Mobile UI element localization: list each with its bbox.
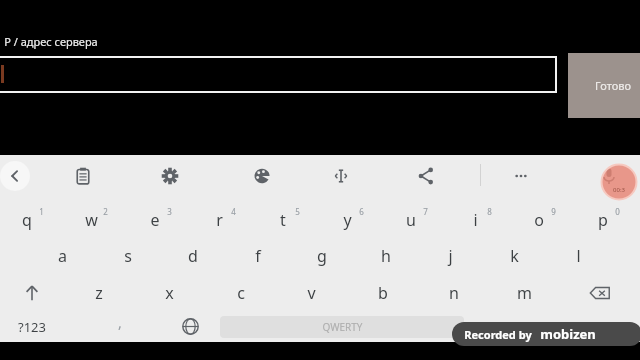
staticText: r [216, 209, 223, 231]
staticText: QWERTY [322, 320, 363, 334]
button[interactable]: w [64, 197, 128, 237]
button[interactable]: c [205, 274, 276, 311]
button[interactable]: r [192, 197, 256, 237]
button[interactable] [0, 56, 557, 93]
button[interactable]: o [512, 197, 576, 237]
staticText: m [517, 282, 532, 304]
staticText: h [381, 245, 391, 267]
button[interactable]: Back [0, 161, 30, 191]
staticText: n [449, 282, 459, 304]
button[interactable]: g [290, 237, 354, 274]
button[interactable]: x [134, 274, 205, 311]
button[interactable]: Backspace [560, 274, 640, 311]
staticText: Готово [595, 78, 631, 93]
staticText: , [118, 313, 122, 332]
button[interactable]: l [546, 237, 610, 274]
button[interactable]: h [354, 237, 418, 274]
button[interactable]: Готово [568, 53, 640, 118]
staticText: 6 [359, 206, 364, 217]
staticText: y [343, 209, 352, 231]
staticText: ?123 [18, 318, 46, 336]
button[interactable]: More options [506, 161, 536, 191]
staticText: i [473, 209, 478, 231]
button[interactable]: Themes [247, 161, 277, 191]
staticText: c [237, 282, 245, 304]
button[interactable]: d [160, 237, 225, 274]
staticText: b [378, 282, 388, 304]
button[interactable]: q [0, 197, 64, 237]
staticText: 4 [231, 206, 236, 217]
staticText: u [406, 209, 416, 231]
staticText: 0 [615, 206, 620, 217]
button[interactable]: a [30, 237, 95, 274]
staticText: x [165, 282, 174, 304]
button[interactable]: i [448, 197, 512, 237]
button[interactable]: n [418, 274, 489, 311]
button[interactable]: z [64, 274, 134, 311]
button[interactable]: Share [411, 161, 441, 191]
staticText: 9 [551, 206, 556, 217]
staticText: w [85, 209, 98, 231]
staticText: 8 [487, 206, 492, 217]
staticText: l [576, 245, 581, 267]
button[interactable]: Change language [160, 311, 220, 342]
button[interactable]: Text editing [326, 161, 356, 191]
staticText: 2 [103, 206, 108, 217]
staticText: mobizen [540, 325, 596, 343]
staticText: k [510, 245, 519, 267]
button[interactable]: f [225, 237, 290, 274]
staticText: p [598, 209, 608, 231]
button[interactable]: j [418, 237, 482, 274]
button[interactable]: e [128, 197, 192, 237]
staticText: s [124, 245, 132, 267]
button[interactable]: y [320, 197, 384, 237]
button[interactable]: ?123 [0, 311, 80, 342]
staticText: 3 [167, 206, 172, 217]
staticText: e [150, 209, 160, 231]
button[interactable]: Settings [155, 161, 185, 191]
staticText: v [307, 282, 316, 304]
staticText: P / адрес сервера [4, 34, 98, 49]
button[interactable]: u [384, 197, 448, 237]
button[interactable]: v [276, 274, 347, 311]
button[interactable]: m [489, 274, 560, 311]
staticText: z [95, 282, 103, 304]
staticText: q [22, 209, 32, 231]
staticText: o [534, 209, 544, 231]
staticText: 7 [423, 206, 428, 217]
staticText: 00:3 [613, 186, 625, 194]
staticText: a [58, 245, 67, 267]
staticText: g [317, 245, 327, 267]
button[interactable]: p [576, 197, 640, 237]
staticText: Recorded by [464, 327, 532, 342]
button[interactable]: QWERTY [220, 316, 464, 338]
button[interactable]: b [347, 274, 418, 311]
button[interactable]: Voice input [594, 161, 624, 191]
staticText: f [255, 245, 261, 267]
button[interactable]: s [95, 237, 160, 274]
staticText: t [280, 209, 286, 231]
staticText: 5 [295, 206, 300, 217]
button[interactable]: k [482, 237, 546, 274]
button[interactable]: Clipboard [68, 161, 98, 191]
staticText: j [448, 245, 453, 267]
staticText: 1 [39, 206, 44, 217]
staticText: d [188, 245, 198, 267]
button[interactable]: Comma [80, 311, 160, 342]
button[interactable]: Shift [0, 274, 64, 311]
button[interactable]: t [256, 197, 320, 237]
